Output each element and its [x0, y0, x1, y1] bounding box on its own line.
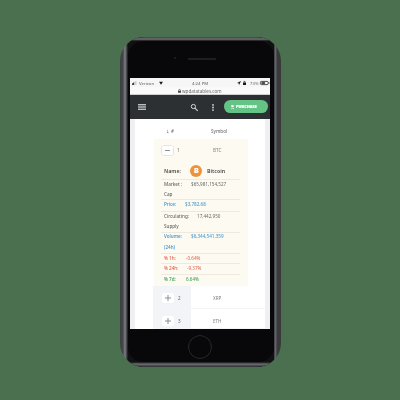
staticText: Cap — [164, 191, 173, 197]
staticText: 2 — [178, 295, 181, 301]
staticText: Ƀ — [194, 166, 199, 176]
staticText: XRP — [213, 295, 222, 301]
button[interactable]: 2 — [135, 286, 265, 309]
staticText: wpdatatables.com — [182, 88, 222, 94]
button[interactable]: Menu — [134, 100, 149, 114]
staticText: 73% — [250, 80, 259, 86]
staticText: BTC — [213, 147, 222, 153]
button[interactable]: 3 — [135, 309, 265, 329]
staticText: 17,442,950 — [197, 213, 221, 219]
staticText: PURCHASE — [236, 104, 257, 109]
staticText: $65,981,154,527 — [191, 181, 227, 187]
staticText: % 24h: — [164, 265, 179, 271]
staticText: Supply — [164, 223, 179, 229]
staticText: Price: — [164, 201, 177, 207]
staticText: (24h) — [164, 244, 176, 250]
button[interactable]: Collapse row — [161, 145, 174, 156]
staticText: 1 — [177, 147, 180, 153]
staticText: % 7d: — [164, 276, 176, 282]
staticText: Verizon — [139, 80, 155, 86]
button[interactable]: Search — [187, 100, 200, 114]
staticText: % 1h: — [164, 255, 176, 261]
staticText: Volume: — [164, 233, 182, 239]
staticText: Circulating: — [164, 213, 189, 219]
staticText: 6.64% — [186, 276, 199, 282]
staticText: 3 — [178, 318, 181, 324]
staticText: $3,782.68 — [185, 201, 206, 207]
staticText: Bitcoin — [207, 167, 226, 174]
staticText: 4:24 PM — [192, 80, 209, 86]
staticText: Market : — [164, 181, 183, 187]
staticText: -0.64% — [186, 255, 201, 261]
button[interactable]: More options — [208, 100, 218, 114]
staticText: -9.37% — [187, 265, 202, 271]
staticText: ↓ # — [166, 128, 175, 134]
staticText: ETH — [213, 318, 222, 324]
staticText: $6,344,541,359 — [191, 233, 224, 239]
staticText: Symbol — [211, 128, 228, 134]
button[interactable]: PURCHASE — [224, 100, 268, 113]
staticText: Name: — [164, 167, 181, 174]
